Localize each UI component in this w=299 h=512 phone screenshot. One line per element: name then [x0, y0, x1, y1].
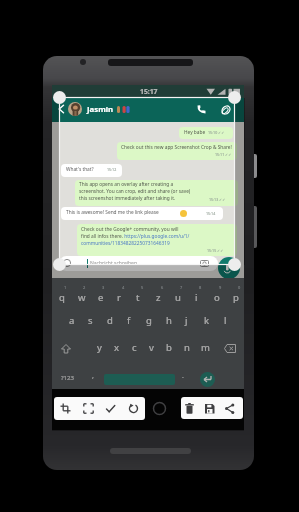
staticText: 2 [83, 285, 86, 290]
button[interactable] [59, 256, 218, 271]
staticText: Nachricht schreiben [90, 260, 137, 267]
staticText: 5 [141, 285, 144, 290]
staticText: t [136, 291, 140, 304]
staticText: screenshot. You can crop, edit and share… [79, 188, 191, 195]
staticText: m [201, 341, 210, 354]
staticText: p [233, 291, 239, 304]
staticText: w [78, 291, 86, 304]
button[interactable] [184, 403, 195, 414]
button[interactable] [204, 403, 215, 414]
button[interactable] [200, 372, 215, 387]
staticText: e [98, 291, 104, 304]
staticText: This is awesome! Send me the link please [66, 209, 159, 216]
staticText: x [114, 341, 120, 354]
button[interactable]: communities/118348282250731646319 [81, 240, 170, 247]
button[interactable] [224, 403, 235, 414]
staticText: s [88, 314, 93, 327]
staticText: 15:10 ✓✓ [208, 130, 225, 135]
button[interactable] [128, 403, 139, 414]
staticText: a [69, 314, 75, 327]
staticText: 4 [122, 285, 125, 290]
staticText: 9 [219, 285, 222, 290]
staticText: 15:13 ✓✓ [209, 197, 226, 202]
staticText: Jasmin [87, 104, 114, 115]
staticText: n [184, 341, 190, 354]
button[interactable] [218, 257, 240, 279]
staticText: 15:12 [107, 167, 117, 172]
staticText: 3 [102, 285, 105, 290]
staticText: k [204, 314, 210, 327]
staticText: q [59, 291, 65, 304]
button[interactable] [60, 403, 71, 414]
staticText: , [92, 371, 94, 381]
staticText: g [146, 314, 152, 327]
staticText: find all infos there. https://plus.googl… [81, 233, 190, 240]
staticText: 6 [161, 285, 164, 290]
button[interactable] [105, 403, 116, 414]
staticText: 15:11 ✓✓ [215, 152, 232, 157]
staticText: 8 [199, 285, 202, 290]
staticText: 1 [64, 285, 67, 290]
staticText: z [156, 291, 161, 304]
button[interactable] [195, 104, 207, 116]
staticText: Hey babe [184, 129, 206, 136]
staticText: c [132, 341, 137, 354]
staticText: What's that? [66, 166, 94, 173]
staticText: h [166, 314, 172, 327]
staticText: v [149, 341, 154, 354]
staticText: Check out the Google+ community, you wil… [81, 226, 179, 233]
staticText: o [214, 291, 220, 304]
staticText: 15:14 [206, 211, 216, 216]
staticText: 0 [238, 285, 241, 290]
staticText: r [117, 291, 121, 304]
staticText: j [185, 314, 188, 327]
staticText: u [175, 291, 181, 304]
staticText: y [97, 341, 102, 354]
staticText: This app opens an overlay after creating… [79, 181, 174, 188]
staticText: 15:15 ✓✓ [207, 248, 224, 253]
staticText: . [182, 371, 184, 381]
button[interactable] [83, 403, 94, 414]
staticText: d [107, 314, 113, 327]
button[interactable] [220, 104, 232, 116]
staticText: l [224, 314, 227, 327]
staticText: 15:17 [140, 87, 158, 96]
staticText: f [127, 314, 131, 327]
staticText: 7 [180, 285, 183, 290]
button[interactable] [152, 401, 167, 416]
staticText: Check out this new app Screenshot Crop &… [121, 144, 232, 151]
staticText: b [166, 341, 172, 354]
staticText: ?123 [61, 374, 74, 382]
staticText: i [195, 291, 198, 304]
staticText: this screenshot immediately after taking… [79, 195, 176, 202]
